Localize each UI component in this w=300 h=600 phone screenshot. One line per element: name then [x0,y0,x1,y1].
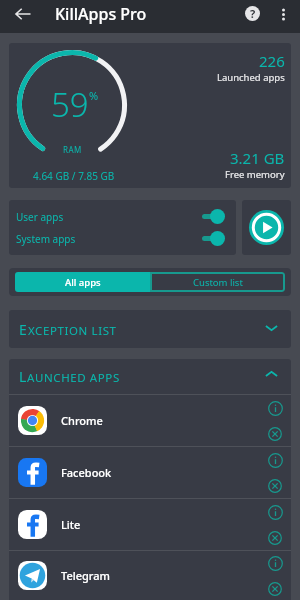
staticText: 3.21 GB [230,148,285,168]
staticText: System apps [16,232,76,246]
staticText: KillApps Pro [55,3,147,25]
staticText: 226 [259,51,285,71]
staticText: ? [250,6,256,21]
button[interactable]: User apps [16,209,225,224]
staticText: Free memory [225,168,285,181]
staticText: E [19,320,28,339]
button[interactable]: Back [6,0,39,27]
button[interactable]: Chrome [9,395,291,446]
button[interactable]: More options [270,1,296,27]
button[interactable]: System apps [16,231,225,246]
staticText: Launched apps [217,71,285,84]
staticText: Facebook [61,465,112,480]
staticText: Telegram [61,568,110,583]
button[interactable]: L [9,359,291,394]
staticText: 4.64 GB / 7.85 GB [33,169,115,183]
button[interactable]: Telegram [9,551,291,600]
button[interactable]: Close app [264,578,286,600]
staticText: User apps [16,210,64,224]
button[interactable]: App info [264,501,286,523]
button[interactable]: Kill apps [242,200,291,255]
button[interactable]: Close app [264,527,286,549]
button[interactable]: E [9,310,291,348]
staticText: % [89,88,99,103]
button[interactable]: All apps [15,272,150,292]
staticText: All apps [65,276,101,289]
button[interactable]: App info [264,552,286,574]
button[interactable]: Help [237,0,267,27]
button[interactable]: Lite [9,499,291,550]
button[interactable]: Close app [264,475,286,497]
button[interactable]: Facebook [9,447,291,498]
staticText: AUNCHED APPS [27,370,120,386]
staticText: Lite [61,517,81,532]
staticText: Chrome [61,413,103,428]
button[interactable]: Close app [264,423,286,445]
button[interactable]: Custom list [150,272,285,292]
staticText: Custom list [193,276,243,289]
staticText: XCEPTION LIST [28,323,117,339]
button[interactable]: App info [264,397,286,419]
staticText: 59 [51,82,89,127]
staticText: RAM [63,144,82,155]
staticText: L [19,367,27,386]
button[interactable]: App info [264,449,286,471]
